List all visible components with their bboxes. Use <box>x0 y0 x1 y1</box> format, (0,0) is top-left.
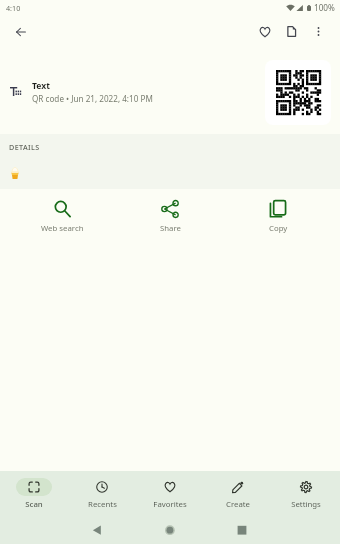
button[interactable]: Share <box>116 189 224 241</box>
staticText: 4:10 <box>6 3 21 13</box>
staticText: Favorites <box>153 499 187 510</box>
staticText: DETAILS <box>9 142 40 152</box>
button[interactable]: Copy <box>224 189 332 241</box>
button[interactable]: Favorite <box>251 18 278 45</box>
staticText: 100% <box>314 2 335 13</box>
button[interactable]: Save to file <box>278 18 305 45</box>
button[interactable]: More options <box>305 18 332 45</box>
staticText: Web search <box>41 223 84 234</box>
staticText: Create <box>226 499 250 510</box>
button[interactable]: Create <box>204 471 272 520</box>
staticText: Settings <box>291 499 321 510</box>
staticText: QR code • Jun 21, 2022, 4:10 PM <box>32 93 153 104</box>
button[interactable]: Web search <box>8 189 116 241</box>
other: QR code <box>265 60 331 125</box>
button[interactable]: Recents <box>68 471 136 520</box>
staticText: Scan <box>25 499 43 510</box>
button[interactable]: Back <box>7 18 34 45</box>
button[interactable]: Favorites <box>136 471 204 520</box>
button[interactable]: Scan <box>0 471 68 520</box>
staticText: Text <box>32 80 51 92</box>
staticText: Copy <box>269 223 288 234</box>
staticText: Share <box>160 223 181 234</box>
button[interactable]: Settings <box>272 471 340 520</box>
button[interactable]: Text <box>0 48 340 134</box>
staticText: Recents <box>88 499 117 510</box>
